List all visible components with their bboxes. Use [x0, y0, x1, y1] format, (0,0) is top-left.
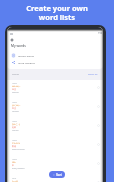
- staticText: Noun: [12, 139, 17, 142]
- button[interactable]: Noun: [7, 156, 103, 175]
- button[interactable]: Select all: [88, 73, 98, 76]
- staticText: 学生: [12, 107, 16, 110]
- button[interactable]: Noun: [7, 118, 103, 137]
- staticText: 先生: [12, 88, 16, 91]
- button[interactable]: Verb: [7, 175, 103, 182]
- staticText: Noun: [12, 101, 17, 104]
- button[interactable]: Noun: [7, 137, 103, 156]
- staticText: friend of mine: [12, 148, 25, 151]
- button[interactable]: Noun: [7, 99, 103, 118]
- button[interactable]: Import words: [12, 52, 72, 58]
- staticText: suburb: [12, 129, 19, 132]
- button[interactable]: Noun: [7, 80, 103, 99]
- staticText: 近郊: [12, 126, 16, 129]
- staticText: がくせい: [12, 104, 21, 107]
- staticText: Create your own word lists: [0, 3, 114, 22]
- staticText: book, reading: [12, 167, 25, 170]
- staticText: Select all: [88, 73, 98, 76]
- staticText: student: [12, 110, 19, 113]
- button[interactable]: Start: [49, 171, 65, 178]
- staticText: たべる: [12, 180, 19, 182]
- staticText: ほん: [12, 161, 17, 164]
- staticText: teacher: [12, 91, 19, 94]
- staticText: My words: [11, 44, 26, 48]
- staticText: More category: [18, 61, 36, 64]
- staticText: Verb: [12, 177, 17, 180]
- staticText: 友達: [12, 145, 16, 148]
- staticText: せんせい: [12, 85, 21, 88]
- staticText: きんこう: [12, 123, 21, 126]
- staticText: Import words: [18, 54, 35, 57]
- button[interactable]: Add word list: [9, 37, 15, 43]
- staticText: Words: [12, 73, 19, 76]
- staticText: Start: [56, 173, 62, 176]
- staticText: Noun: [12, 158, 17, 161]
- staticText: 本: [12, 164, 14, 167]
- staticText: Noun: [12, 82, 17, 85]
- staticText: ともだち: [12, 142, 21, 145]
- staticText: Noun: [12, 120, 17, 123]
- button[interactable]: More category: [12, 59, 72, 65]
